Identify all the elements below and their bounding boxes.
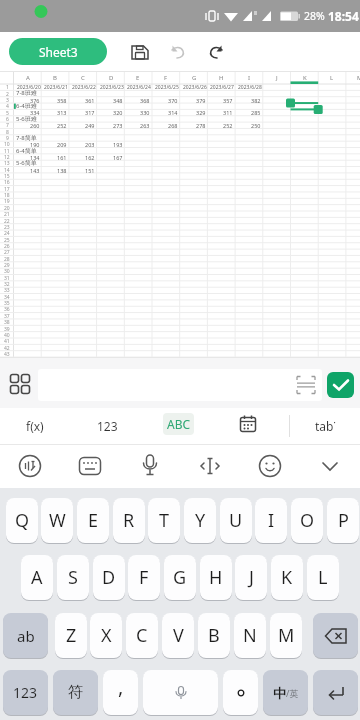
button[interactable]: E <box>77 498 109 543</box>
button[interactable]: S <box>57 555 89 600</box>
button[interactable]: 符 <box>53 670 98 715</box>
button[interactable]: I <box>255 498 287 543</box>
staticText: 6-4简单 <box>16 147 37 155</box>
button[interactable]: T <box>148 498 180 543</box>
staticText: A <box>26 74 30 82</box>
button[interactable] <box>138 453 162 479</box>
staticText: 320 <box>113 109 123 116</box>
staticText: 13 <box>4 160 10 167</box>
staticText: 1 <box>6 84 9 91</box>
staticText: 329 <box>196 109 206 116</box>
staticText: 中 <box>273 685 286 701</box>
button[interactable] <box>143 670 218 715</box>
button[interactable] <box>238 414 258 434</box>
staticText: 41 <box>4 338 10 345</box>
staticText: 357 <box>223 97 233 104</box>
staticText: tab˙ <box>315 418 336 434</box>
staticText: 14 <box>4 167 10 174</box>
button[interactable] <box>78 454 102 478</box>
button[interactable]: tab˙ <box>300 408 350 444</box>
button[interactable] <box>327 372 354 398</box>
button[interactable]: U <box>220 498 252 543</box>
button[interactable]: C <box>126 613 158 658</box>
button[interactable]: P <box>327 498 359 543</box>
staticText: 376 <box>30 97 40 104</box>
button[interactable]: W <box>41 498 73 543</box>
button[interactable]: , <box>103 670 138 715</box>
staticText: N <box>243 623 257 648</box>
staticText: 209 <box>57 141 67 148</box>
staticText: O <box>300 508 315 533</box>
button[interactable]: K <box>271 555 303 600</box>
staticText: 9 <box>6 135 9 142</box>
staticText: 21 <box>4 211 10 218</box>
button[interactable]: f(x) <box>10 408 60 444</box>
staticText: 28% <box>304 9 325 23</box>
staticText: 370 <box>168 97 178 104</box>
staticText: 2023/6/21 <box>44 84 68 91</box>
staticText: 8 <box>6 129 9 136</box>
staticText: 123 <box>97 418 118 434</box>
button[interactable]: F <box>128 555 160 600</box>
staticText: U <box>229 508 243 533</box>
staticText: 249 <box>85 122 95 129</box>
staticText: 2023/6/25 <box>155 84 179 91</box>
staticText: E <box>88 508 99 533</box>
button[interactable] <box>223 670 258 715</box>
staticText: 123 <box>13 683 38 702</box>
button[interactable]: D <box>93 555 125 600</box>
button[interactable]: ABC <box>163 413 194 435</box>
staticText: 40 <box>4 332 10 339</box>
button[interactable]: V <box>162 613 194 658</box>
button[interactable]: H <box>200 555 232 600</box>
staticText: G <box>192 74 197 82</box>
button[interactable]: ab <box>3 613 48 658</box>
staticText: 161 <box>57 154 67 161</box>
button[interactable]: R <box>113 498 145 543</box>
staticText: , <box>118 673 124 700</box>
button[interactable] <box>129 41 151 63</box>
staticText: 314 <box>168 109 178 116</box>
button[interactable] <box>258 454 282 478</box>
button[interactable] <box>318 454 342 478</box>
staticText: 37 <box>4 313 10 320</box>
button[interactable]: 中 <box>263 670 308 715</box>
staticText: 19 <box>4 198 10 205</box>
button[interactable] <box>313 670 358 715</box>
button[interactable]: B <box>198 613 230 658</box>
staticText: 2023/6/22 <box>72 84 96 91</box>
button[interactable]: G <box>164 555 196 600</box>
button[interactable] <box>198 454 222 478</box>
button[interactable]: 123 <box>82 408 132 444</box>
button[interactable] <box>8 372 32 396</box>
button[interactable] <box>313 613 358 658</box>
button[interactable]: Sheet3 <box>9 38 107 65</box>
button[interactable] <box>18 454 42 478</box>
button[interactable]: L <box>307 555 339 600</box>
button[interactable]: 123 <box>3 670 48 715</box>
staticText: 4 <box>6 103 9 110</box>
button[interactable] <box>206 41 228 63</box>
staticText: 348 <box>113 97 123 104</box>
staticText: K <box>303 74 307 82</box>
button[interactable] <box>166 41 188 63</box>
staticText: 330 <box>140 109 150 116</box>
button[interactable]: Q <box>6 498 38 543</box>
button[interactable]: Z <box>55 613 87 658</box>
staticText: 167 <box>113 154 123 161</box>
button[interactable]: A <box>21 555 53 600</box>
staticText: 162 <box>85 154 95 161</box>
staticText: L <box>330 74 334 82</box>
button[interactable]: Y <box>184 498 216 543</box>
button[interactable]: M <box>270 613 302 658</box>
button[interactable]: X <box>90 613 122 658</box>
button[interactable]: O <box>291 498 323 543</box>
staticText: 31 <box>4 275 10 282</box>
staticText: 6-4班难 <box>16 102 37 110</box>
button[interactable]: J <box>235 555 267 600</box>
staticText: 27 <box>4 249 10 256</box>
staticText: 43 <box>4 351 10 358</box>
button[interactable] <box>38 369 322 401</box>
button[interactable]: N <box>234 613 266 658</box>
staticText: 317 <box>85 109 95 116</box>
